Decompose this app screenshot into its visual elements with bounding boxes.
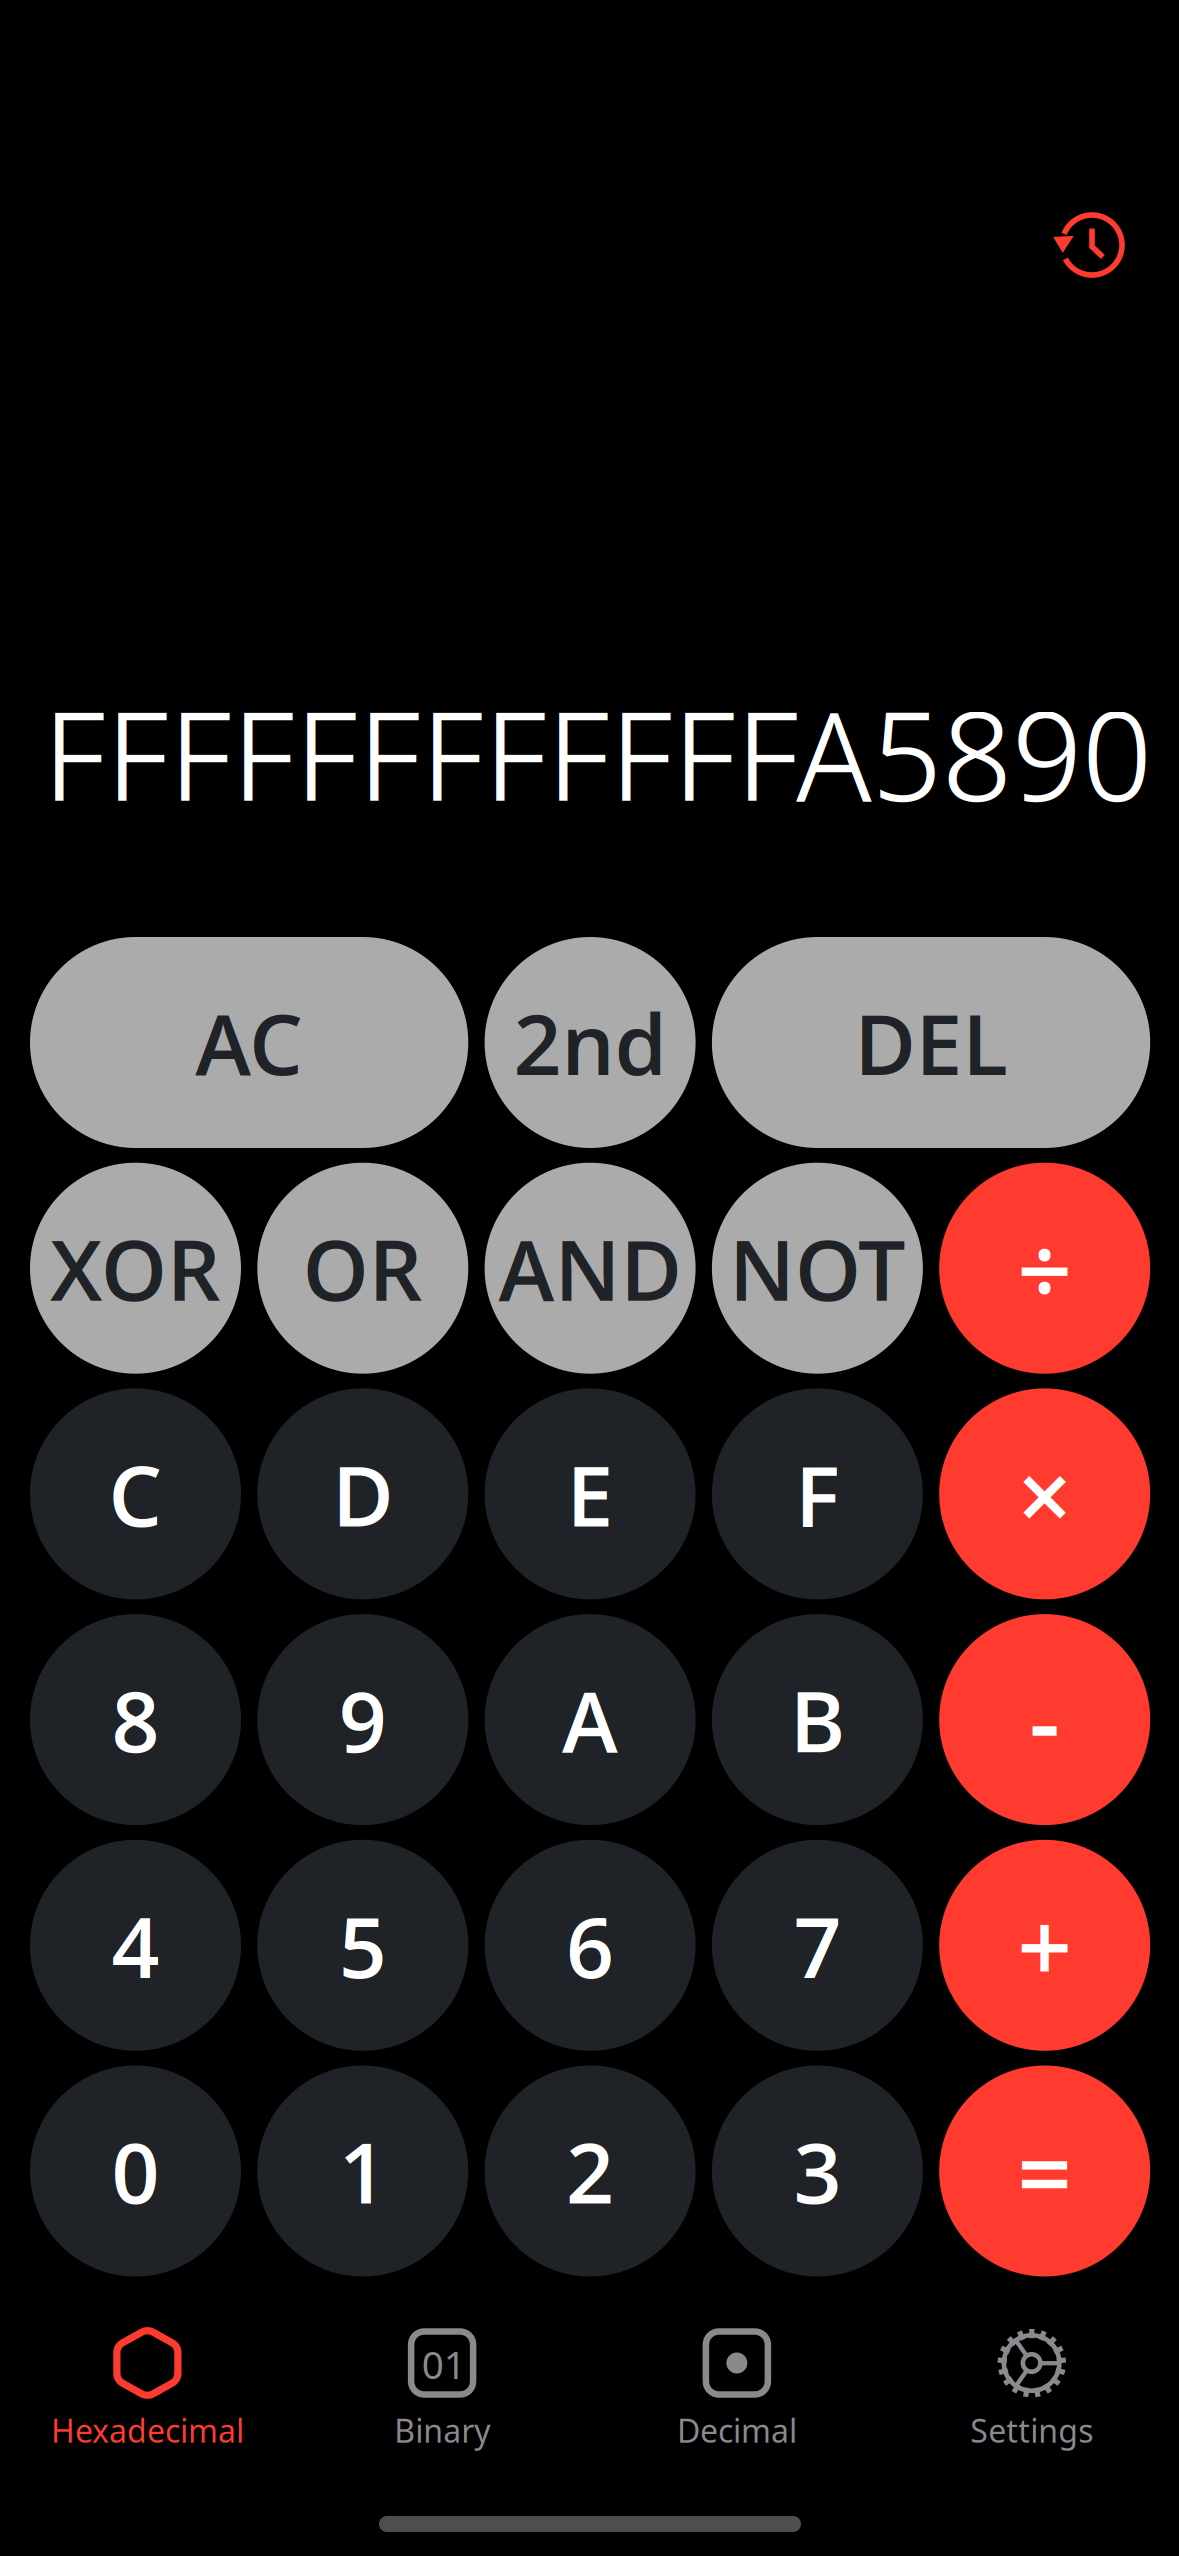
staticText: B [790,1662,845,1777]
staticText: 2nd [514,985,667,1100]
button[interactable]: 01 [295,2326,590,2454]
staticText: D [332,1437,393,1551]
staticText: A [562,1662,618,1777]
button[interactable]: E [485,1388,696,1599]
staticText: = [1017,2106,1072,2236]
staticText: AC [195,985,303,1100]
staticText: 2 [566,2114,614,2228]
staticText: DEL [855,985,1008,1100]
button[interactable]: 5 [257,1840,468,2051]
button[interactable]: A [485,1614,696,1825]
staticText: 0 [111,2114,159,2228]
button[interactable]: Hexadecimal [0,2326,295,2454]
button[interactable]: = [939,2065,1150,2276]
staticText: F [795,1437,840,1551]
staticText: E [567,1437,614,1551]
button[interactable]: AND [485,1163,696,1374]
button[interactable]: F [712,1388,923,1599]
button[interactable]: 3 [712,2065,923,2276]
button[interactable]: 7 [712,1840,923,2051]
staticText: 3 [793,2114,841,2228]
button[interactable]: DEL [712,937,1150,1148]
button[interactable]: Decimal [589,2326,884,2454]
staticText: - [1029,1654,1060,1785]
staticText: + [1017,1880,1072,2011]
staticText: Decimal [677,2409,797,2451]
button[interactable]: Settings [884,2326,1179,2454]
button[interactable]: OR [257,1163,468,1374]
button[interactable]: AC [30,937,468,1148]
button[interactable]: NOT [712,1163,923,1374]
staticText: C [108,1437,162,1551]
staticText: Binary [394,2409,490,2451]
button[interactable]: 1 [257,2065,468,2276]
staticText: × [1017,1428,1072,1559]
button[interactable]: + [939,1840,1150,2051]
staticText: 1 [339,2114,387,2228]
button[interactable]: XOR [30,1163,241,1374]
button[interactable]: 6 [485,1840,696,2051]
button[interactable]: C [30,1388,241,1599]
staticText: 5 [339,1888,387,2002]
button[interactable]: 9 [257,1614,468,1825]
staticText: Settings [970,2409,1093,2451]
staticText: 9 [339,1662,387,1777]
staticText: NOT [729,1211,906,1325]
staticText: AND [499,1211,682,1325]
staticText: ÷ [1017,1203,1072,1334]
staticText: Hexadecimal [51,2409,244,2451]
staticText: OR [303,1211,423,1325]
button[interactable]: B [712,1614,923,1825]
button[interactable]: × [939,1388,1150,1599]
button[interactable]: History [1053,211,1127,281]
staticText: 6 [566,1888,614,2002]
staticText: 7 [793,1888,841,2002]
button[interactable]: 8 [30,1614,241,1825]
button[interactable]: 0 [30,2065,241,2276]
button[interactable]: ÷ [939,1163,1150,1374]
staticText: XOR [50,1211,221,1325]
button[interactable]: D [257,1388,468,1599]
staticText: 4 [111,1888,159,2002]
button[interactable]: 2 [485,2065,696,2276]
staticText: 01 [422,2338,466,2390]
button[interactable]: 2nd [485,937,696,1148]
button[interactable]: - [939,1614,1150,1825]
staticText: 8 [111,1662,159,1777]
button[interactable]: 4 [30,1840,241,2051]
staticText: FFFFFFFFFFFFA5890 [43,670,1152,837]
